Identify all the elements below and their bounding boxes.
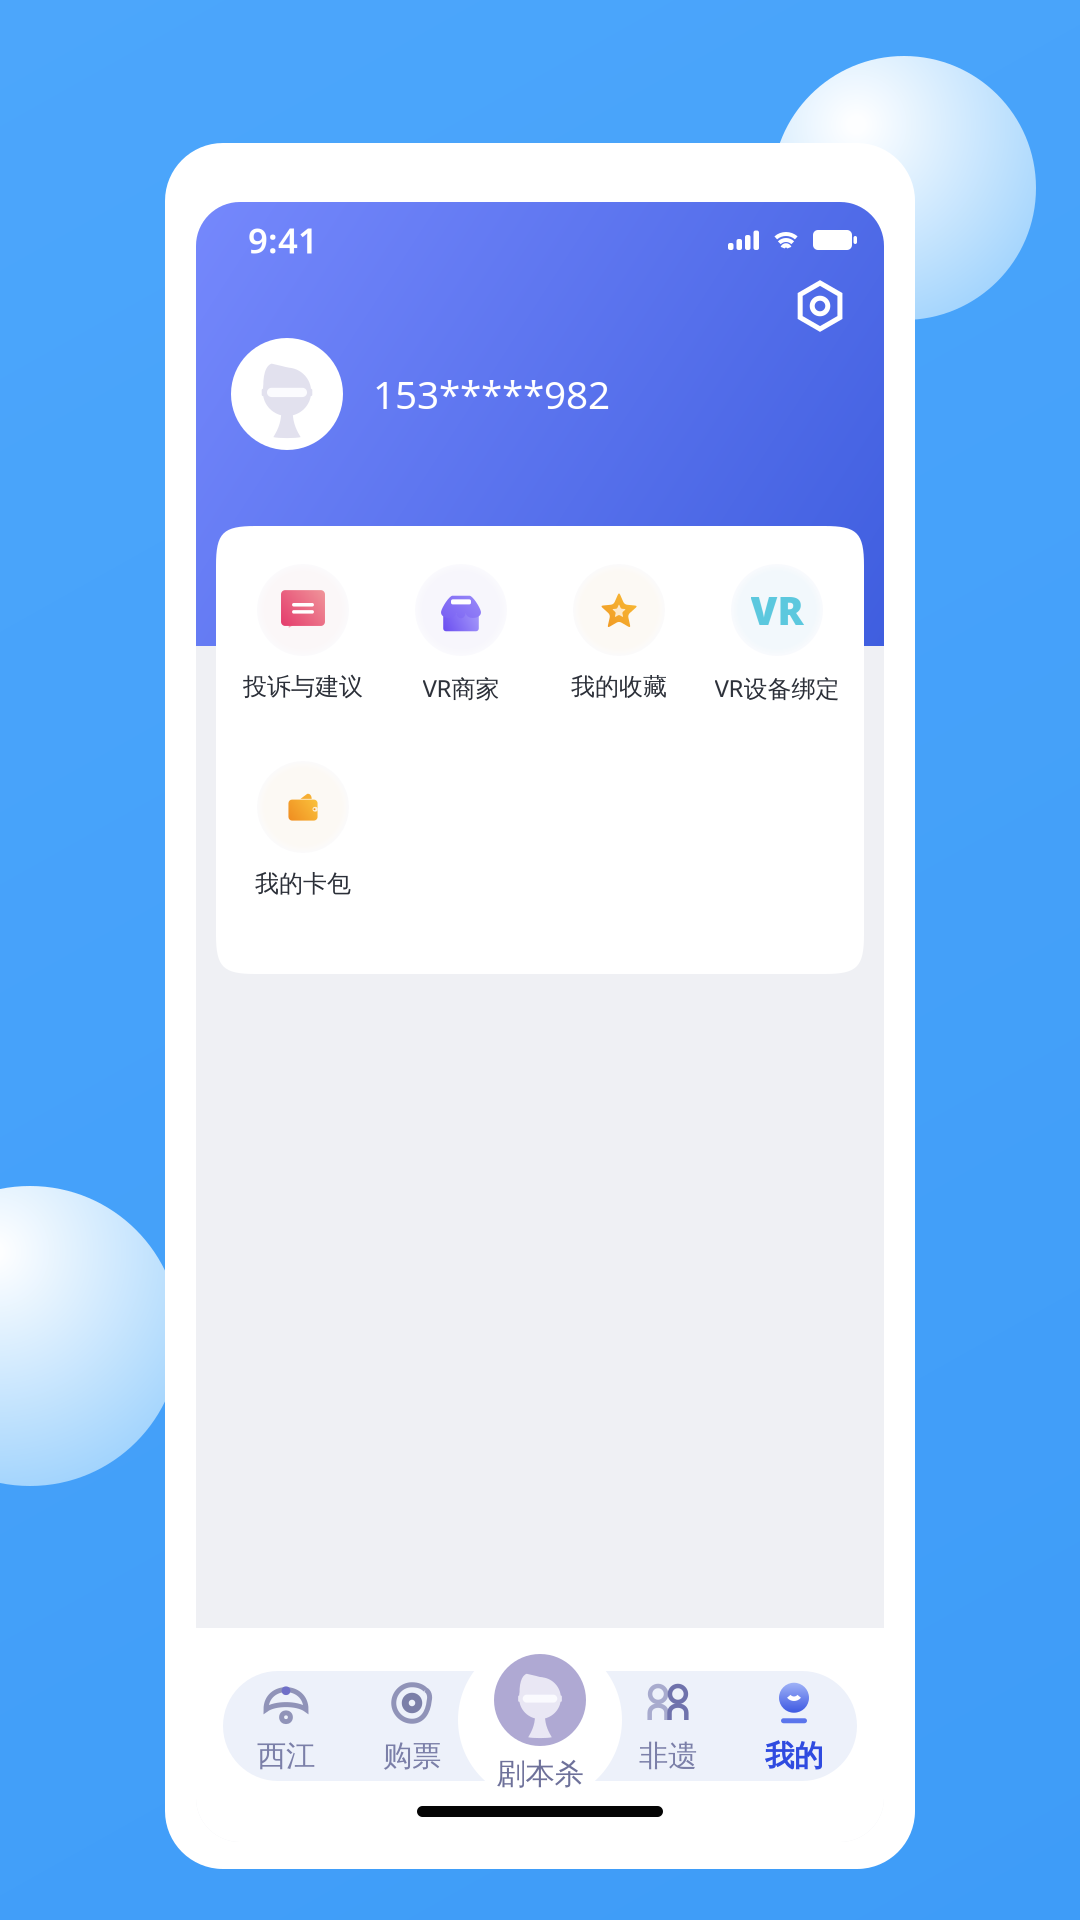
- button[interactable]: VR: [698, 564, 856, 761]
- staticText: 我的收藏: [571, 672, 667, 701]
- staticText: 西江: [257, 1738, 315, 1774]
- button[interactable]: 购票: [349, 1671, 475, 1781]
- staticText: VR设备绑定: [714, 672, 839, 704]
- button[interactable]: 投诉与建议: [224, 564, 382, 761]
- staticText: 9:41: [248, 217, 318, 263]
- button[interactable]: 我的: [731, 1671, 857, 1781]
- staticText: 投诉与建议: [243, 672, 363, 701]
- button[interactable]: 剧本杀: [460, 1654, 620, 1790]
- staticText: 剧本杀: [496, 1756, 583, 1792]
- staticText: 非遗: [639, 1738, 697, 1774]
- button[interactable]: 非遗: [605, 1671, 731, 1781]
- button[interactable]: 西江: [223, 1671, 349, 1781]
- button[interactable]: Settings: [782, 278, 858, 334]
- button[interactable]: 我的收藏: [540, 564, 698, 761]
- staticText: 153*****982: [373, 368, 610, 420]
- staticText: 购票: [383, 1738, 441, 1774]
- staticText: 我的: [765, 1738, 823, 1774]
- staticText: VR商家: [422, 672, 499, 704]
- button[interactable]: 我的卡包: [224, 761, 382, 958]
- staticText: 我的卡包: [255, 869, 351, 898]
- staticText: VR: [750, 584, 803, 636]
- button[interactable]: VR商家: [382, 564, 540, 761]
